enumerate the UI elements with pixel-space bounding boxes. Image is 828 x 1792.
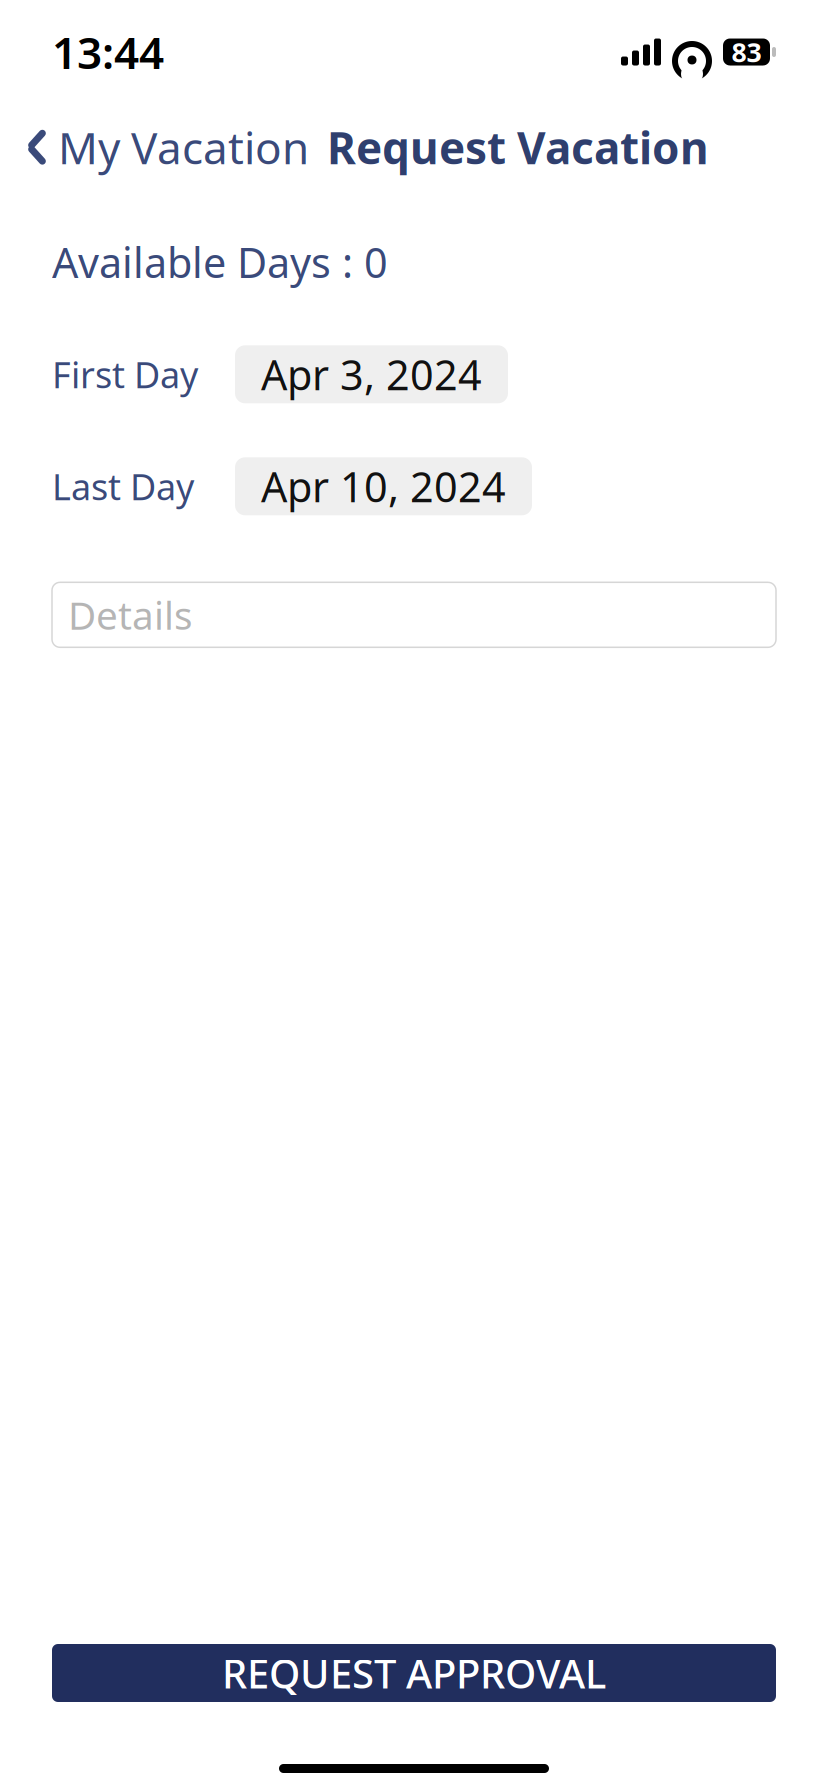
button[interactable]: REQUEST APPROVAL — [52, 1644, 776, 1702]
button[interactable]: My Vacation — [26, 110, 309, 184]
button[interactable]: Details — [52, 582, 776, 647]
staticText: Request Vacation — [327, 118, 709, 176]
button[interactable]: Apr 3, 2024 — [235, 345, 508, 403]
staticText: Available Days : 0 — [52, 234, 388, 289]
staticText: Apr 10, 2024 — [261, 459, 506, 514]
staticText: My Vacation — [58, 118, 309, 176]
staticText: Details — [68, 589, 193, 640]
button[interactable]: Apr 10, 2024 — [235, 457, 532, 515]
staticText: REQUEST APPROVAL — [222, 1646, 606, 1699]
staticText: Apr 3, 2024 — [261, 347, 482, 402]
staticText: Last Day — [52, 462, 194, 510]
staticText: 13:44 — [52, 23, 164, 81]
staticText: 83 — [731, 34, 761, 70]
staticText: First Day — [52, 350, 198, 398]
